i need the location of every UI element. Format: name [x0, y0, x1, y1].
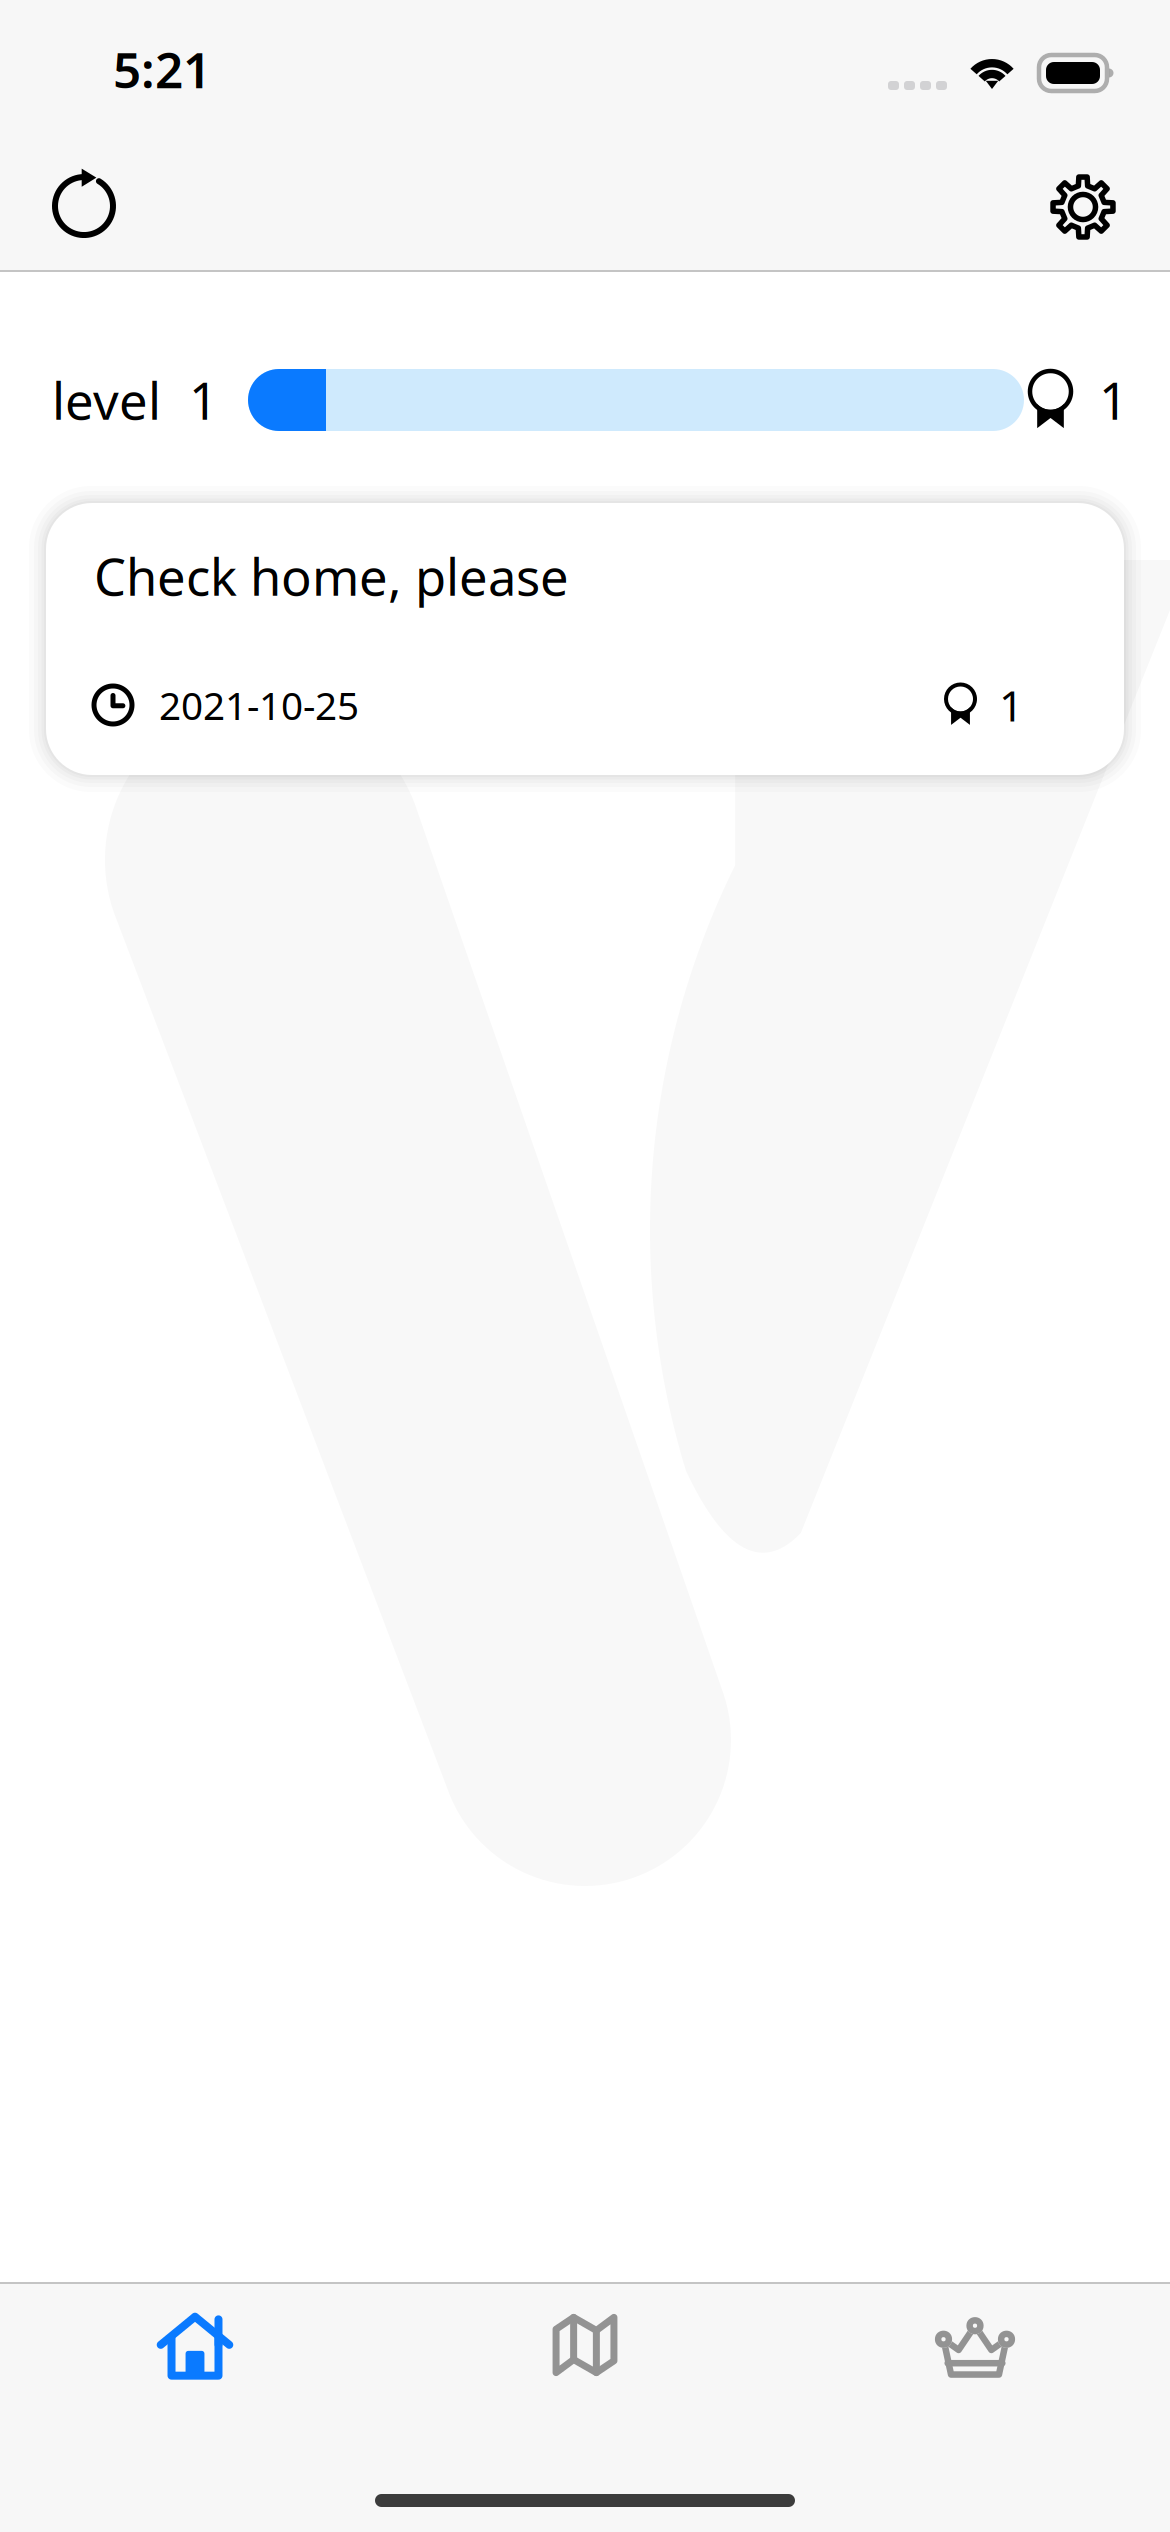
button[interactable]: Home [0, 2313, 390, 2443]
button[interactable]: Map [390, 2313, 780, 2443]
staticText: 1 [999, 677, 1023, 733]
staticText: 2021-10-25 [159, 679, 359, 731]
staticText: 1 [189, 366, 218, 434]
button[interactable]: Check home, please [46, 503, 1124, 775]
button[interactable]: Rewards [780, 2313, 1170, 2443]
staticText: Check home, please [94, 542, 569, 610]
button[interactable]: Refresh [24, 132, 144, 272]
button[interactable]: Settings [1023, 132, 1143, 272]
staticText: level [52, 366, 161, 434]
staticText: 1 [1099, 366, 1128, 434]
staticText: 5:21 [113, 36, 211, 102]
